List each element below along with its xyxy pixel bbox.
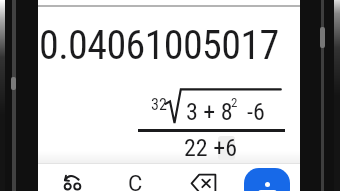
staticText: 32 bbox=[151, 95, 167, 114]
staticText: -6 bbox=[247, 98, 265, 126]
staticText: 3 + 8 bbox=[186, 98, 233, 126]
button[interactable] bbox=[188, 170, 220, 191]
staticText: C bbox=[128, 171, 143, 191]
staticText: 0.04061005017 bbox=[39, 22, 279, 69]
button[interactable] bbox=[244, 168, 290, 191]
button[interactable] bbox=[57, 168, 89, 191]
staticText: 22 +6 bbox=[184, 134, 237, 162]
button[interactable]: C bbox=[124, 169, 148, 191]
staticText: 2 bbox=[231, 95, 238, 110]
